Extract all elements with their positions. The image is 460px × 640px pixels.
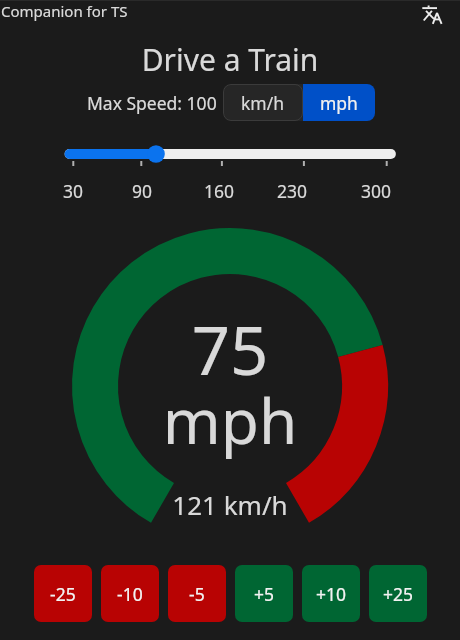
button[interactable]: -25 (34, 565, 92, 622)
button[interactable]: km/h (223, 84, 303, 121)
staticText: 30 (63, 179, 84, 203)
button[interactable]: +25 (369, 565, 427, 622)
staticText: 160 (204, 179, 235, 203)
staticText: +25 (383, 582, 414, 606)
staticText: Max Speed: 100 (87, 91, 217, 115)
button[interactable]: -5 (168, 565, 226, 622)
staticText: Drive a Train (0, 39, 460, 80)
button[interactable]: +5 (235, 565, 293, 622)
button[interactable]: Translate language (410, 0, 456, 29)
staticText: +10 (316, 582, 347, 606)
staticText: mph (320, 91, 358, 115)
staticText: -25 (50, 582, 76, 606)
staticText: 230 (277, 179, 308, 203)
staticText: mph (0, 378, 460, 462)
button[interactable]: mph (303, 84, 375, 121)
staticText: -10 (117, 582, 143, 606)
staticText: 75 (0, 303, 460, 394)
staticText: +5 (254, 582, 275, 606)
staticText: 300 (361, 179, 392, 203)
staticText: -5 (189, 582, 205, 606)
staticText: Companion for TS (1, 1, 128, 21)
button[interactable]: -10 (101, 565, 159, 622)
staticText: 90 (132, 179, 153, 203)
button[interactable]: +10 (302, 565, 360, 622)
staticText: 121 km/h (0, 487, 460, 522)
staticText: km/h (241, 91, 285, 115)
